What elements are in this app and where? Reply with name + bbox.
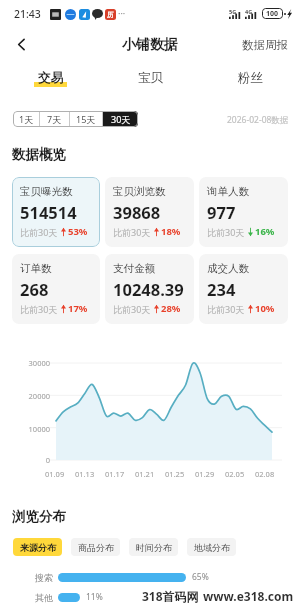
staticText: 比前30天 [20, 303, 58, 315]
staticText: 514514 [20, 201, 77, 223]
staticText: 宝贝浏览数 [113, 185, 166, 198]
staticText: 16% [255, 225, 275, 238]
staticText: 搜索 [0, 572, 53, 583]
staticText: 比前30天 [113, 226, 151, 238]
staticText: 02.05 [225, 469, 245, 479]
staticText: www.e318.com [203, 588, 294, 604]
button[interactable]: 交易 [0, 68, 100, 92]
staticText: 01.25 [165, 469, 185, 479]
staticText: 02.08 [255, 469, 275, 479]
staticText: 数据周报 [242, 38, 288, 52]
staticText: 询单人数 [207, 185, 249, 198]
button[interactable]: 支付金额 [105, 254, 194, 324]
staticText: 比前30天 [207, 303, 245, 315]
staticText: 39868 [113, 201, 161, 223]
staticText: 浏览分布 [12, 508, 66, 525]
button[interactable]: 成交人数 [199, 254, 288, 324]
button[interactable]: 订单数 [12, 254, 100, 324]
staticText: 来源分布 [20, 542, 56, 553]
staticText: 20000 [12, 391, 50, 401]
staticText: 地域分布 [194, 542, 230, 553]
staticText: 318首码网 [142, 588, 199, 604]
staticText: 30天 [111, 113, 131, 125]
staticText: ··· [118, 7, 126, 19]
staticText: 数据概览 [12, 146, 66, 163]
staticText: 10248.39 [113, 278, 184, 300]
button[interactable]: 宝贝 [100, 68, 200, 92]
staticText: 7天 [47, 113, 62, 125]
staticText: 比前30天 [20, 226, 58, 238]
staticText: 977 [207, 201, 236, 223]
staticText: 01.29 [195, 469, 215, 479]
staticText: 234 [207, 278, 236, 300]
button[interactable]: Back [8, 31, 34, 57]
staticText: 5G [229, 8, 237, 15]
staticText: 100 [266, 9, 279, 19]
staticText: 宝贝 [138, 70, 163, 86]
button[interactable]: 商品分布 [71, 538, 120, 556]
button[interactable]: 数据周报 [242, 38, 288, 52]
button[interactable]: 15天 [70, 111, 102, 127]
staticText: 268 [20, 278, 49, 300]
staticText: 17% [68, 302, 88, 315]
staticText: 53% [68, 225, 88, 238]
staticText: 其他 [0, 592, 53, 603]
staticText: 65% [192, 571, 209, 583]
staticText: 15天 [76, 113, 96, 125]
staticText: 11% [86, 591, 103, 603]
staticText: 成交人数 [207, 262, 249, 275]
staticText: 21:43 [14, 7, 41, 21]
staticText: 支付金额 [113, 262, 155, 275]
staticText: 10000 [12, 424, 50, 434]
staticText: 28% [161, 302, 181, 315]
staticText: 01.17 [105, 469, 125, 479]
staticText: 比前30天 [207, 226, 245, 238]
button[interactable]: 粉丝 [200, 68, 300, 92]
staticText: 2026-02-08数据 [227, 114, 289, 126]
button[interactable]: 询单人数 [199, 177, 288, 247]
staticText: 订单数 [20, 262, 52, 275]
staticText: 01.13 [75, 469, 95, 479]
staticText: 宝贝曝光数 [20, 185, 73, 198]
staticText: 小铺数据 [122, 36, 178, 54]
staticText: 粉丝 [238, 70, 263, 86]
staticText: 时间分布 [136, 542, 172, 553]
staticText: 比前30天 [113, 303, 151, 315]
button[interactable]: 30天 [103, 111, 138, 127]
staticText: 18% [161, 225, 181, 238]
button[interactable]: 时间分布 [129, 538, 178, 556]
staticText: 历 [107, 11, 114, 19]
staticText: 商品分布 [78, 542, 114, 553]
staticText: 01.09 [45, 469, 65, 479]
staticText: 30000 [12, 358, 50, 368]
staticText: 1天 [19, 113, 34, 125]
button[interactable]: 7天 [40, 111, 69, 127]
staticText: 01.21 [135, 469, 155, 479]
button[interactable]: 宝贝浏览数 [105, 177, 194, 247]
button[interactable]: 来源分布 [13, 538, 62, 556]
staticText: 0 [12, 455, 50, 465]
staticText: 交易 [38, 70, 63, 86]
button[interactable]: 宝贝曝光数 [12, 177, 100, 247]
button[interactable]: 1天 [13, 111, 39, 127]
staticText: 10% [255, 302, 275, 315]
button[interactable]: 地域分布 [187, 538, 236, 556]
staticText: 4G [245, 8, 253, 15]
